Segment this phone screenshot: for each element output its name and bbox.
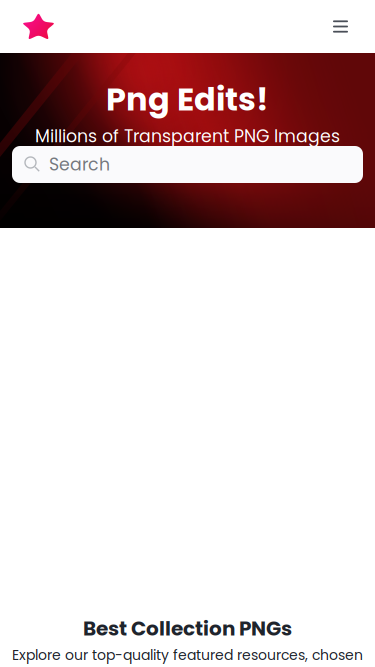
button[interactable]: Menu: [333, 0, 375, 52]
staticText: Explore our top-quality featured resourc…: [12, 645, 363, 665]
staticText: Png Edits!: [106, 77, 269, 122]
staticText: Millions of Transparent PNG Images: [35, 124, 340, 148]
staticText: Best Collection PNGs: [83, 614, 292, 642]
staticText: Search: [49, 152, 110, 177]
button[interactable]: Home: [0, 0, 56, 52]
button[interactable]: Search: [12, 146, 363, 183]
